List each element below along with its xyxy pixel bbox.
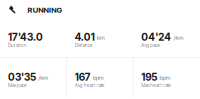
staticText: 195: [141, 71, 157, 83]
staticText: Avg pace: [141, 42, 160, 48]
staticText: 167: [75, 71, 91, 83]
staticText: RUNNING: [27, 5, 63, 15]
button[interactable]: 4.01: [67, 31, 133, 60]
staticText: /km: [38, 74, 48, 81]
staticText: bpm: [159, 74, 170, 81]
staticText: Distance: [75, 42, 93, 48]
staticText: 4.01: [75, 31, 95, 43]
staticText: Max pace: [8, 82, 27, 88]
staticText: bpm: [93, 74, 104, 81]
button[interactable]: 167: [67, 71, 133, 99]
staticText: Duration: [8, 42, 27, 48]
button[interactable]: 195: [133, 71, 200, 99]
staticText: /km: [173, 34, 183, 41]
staticText: Max heart rate: [141, 82, 171, 88]
staticText: 03'35: [8, 71, 36, 83]
button[interactable]: 03'35: [0, 71, 67, 99]
button[interactable]: 17'43.0: [0, 31, 67, 60]
staticText: Avg heart rate: [75, 82, 105, 88]
staticText: km: [97, 34, 105, 41]
staticText: 04'24: [141, 31, 171, 43]
button[interactable]: 04'24: [133, 31, 200, 60]
staticText: 17'43.0: [8, 31, 43, 43]
